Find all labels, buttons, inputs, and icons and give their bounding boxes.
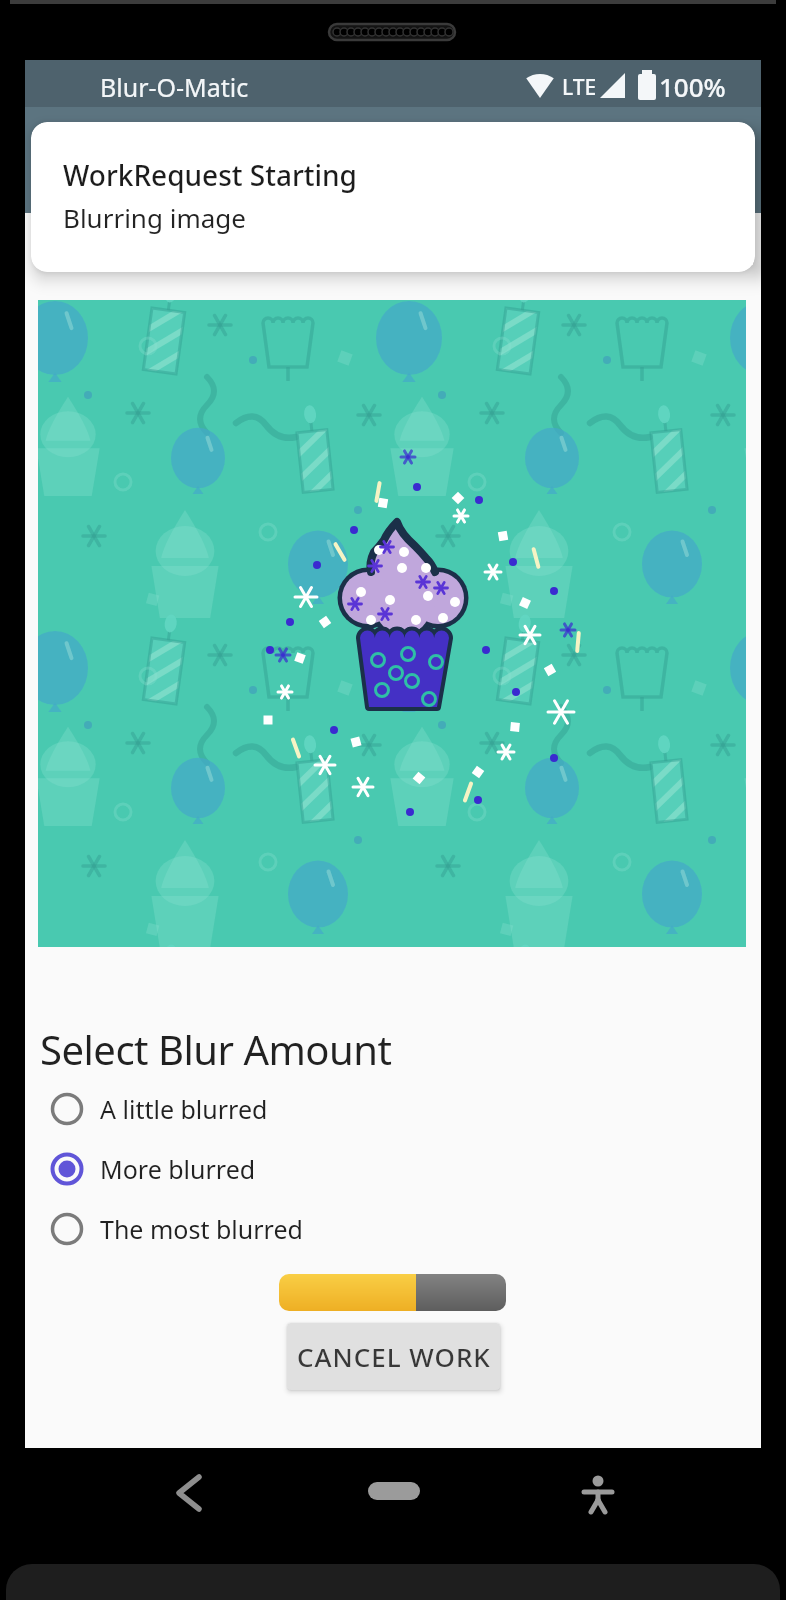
button[interactable]: More blurred (52, 1149, 256, 1189)
button[interactable] (160, 1470, 216, 1516)
button[interactable]: CANCEL WORK (287, 1323, 500, 1390)
staticText: A little blurred (100, 1092, 268, 1126)
staticText: WorkRequest Starting (63, 156, 357, 194)
staticText: Blur-O-Matic (100, 70, 249, 104)
staticText: More blurred (100, 1152, 256, 1186)
button[interactable] (360, 1470, 428, 1516)
button[interactable]: The most blurred (52, 1209, 303, 1249)
staticText: LTE (562, 73, 597, 102)
staticText: CANCEL WORK (297, 1339, 491, 1374)
staticText: Select Blur Amount (40, 1022, 392, 1076)
button[interactable]: WorkRequest Starting (31, 122, 755, 272)
button[interactable] (570, 1468, 626, 1518)
staticText: 100% (659, 69, 726, 104)
staticText: Blurring image (63, 200, 246, 235)
staticText: The most blurred (100, 1212, 303, 1246)
button[interactable]: A little blurred (52, 1089, 268, 1129)
